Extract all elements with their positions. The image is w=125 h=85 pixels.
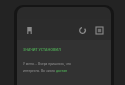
staticText: дастан — [56, 69, 68, 73]
staticText: У меня ... Вчера пришлось, что — [23, 62, 71, 66]
button[interactable]: More options — [92, 23, 106, 37]
staticText: Во число — [41, 69, 56, 73]
staticText: ЗНАЧИТ УСТАНОВИЛ — [23, 47, 61, 52]
button[interactable]: Bookmark — [22, 23, 36, 37]
button[interactable]: Refresh — [75, 23, 89, 37]
staticText: интересно. — [23, 69, 41, 73]
